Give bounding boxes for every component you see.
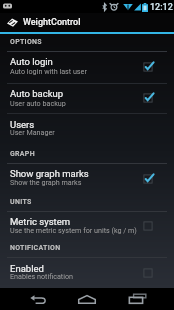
staticText: Use the metric system for units (kg / m) [10, 226, 137, 234]
staticText: Enabled [10, 263, 44, 274]
staticText: Users [10, 119, 35, 130]
button[interactable]: Home [62, 288, 112, 310]
staticText: NOTIFICATION [10, 244, 61, 252]
button[interactable] [0, 259, 174, 289]
staticText: User auto backup [10, 99, 66, 107]
staticText: Show graph marks [10, 168, 89, 179]
button[interactable] [0, 52, 174, 82]
staticText: User Manager [10, 128, 55, 136]
staticText: 12:12 [150, 2, 173, 13]
staticText: OPTIONS [10, 38, 42, 46]
staticText: Enables notification [10, 272, 74, 280]
button[interactable] [0, 212, 174, 242]
button[interactable]: Recent apps [112, 288, 162, 310]
button[interactable] [0, 164, 174, 194]
staticText: Auto login [10, 56, 53, 67]
button[interactable] [0, 115, 174, 145]
staticText: GRAPH [10, 150, 35, 158]
staticText: WeightControl [23, 17, 81, 28]
button[interactable] [0, 84, 174, 114]
staticText: Auto login with last user [10, 67, 87, 75]
button[interactable]: Back [14, 288, 62, 310]
staticText: Auto backup [10, 88, 64, 99]
staticText: Show the graph marks [10, 178, 82, 186]
staticText: Metric system [10, 216, 71, 227]
staticText: UNITS [10, 198, 32, 206]
